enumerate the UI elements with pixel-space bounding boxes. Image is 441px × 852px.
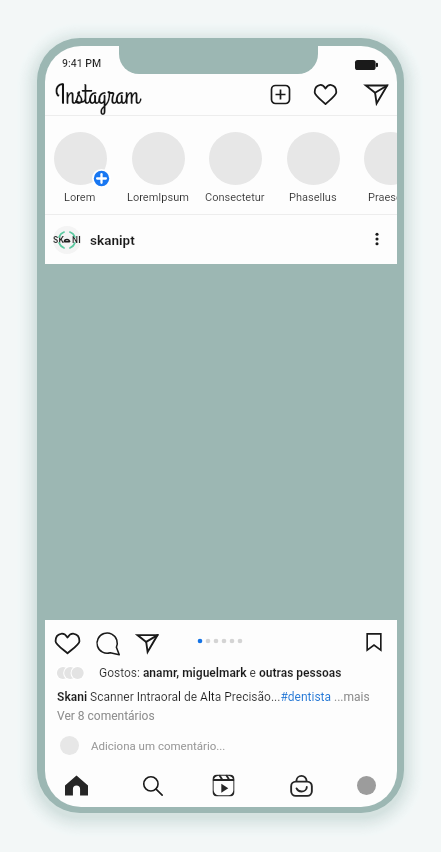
staticText: skanipt: [90, 232, 135, 248]
button[interactable]: Phasellus: [275, 126, 351, 204]
staticText: NI: [72, 235, 81, 245]
button[interactable]: Ver 8 comentários: [57, 706, 155, 726]
button[interactable]: Save: [360, 628, 388, 656]
button[interactable]: Praesent: [352, 126, 397, 204]
button[interactable]: Share: [132, 628, 162, 658]
staticText: Gostos: anamr, miguelmark e outras pesso…: [99, 666, 342, 680]
staticText: Instagram: [55, 78, 140, 114]
button[interactable]: Shop: [284, 768, 318, 802]
button[interactable]: Comment: [92, 628, 122, 658]
button[interactable]: Profile: [350, 769, 382, 801]
staticText: Adiciona um comentário...: [91, 739, 226, 752]
staticText: Consectetur: [205, 191, 265, 204]
button[interactable]: Home: [59, 768, 93, 802]
button[interactable]: SK: [45, 215, 397, 265]
staticText: LoremIpsum: [127, 191, 189, 204]
staticText: SK: [53, 235, 65, 245]
button[interactable]: New post: [265, 79, 295, 109]
button[interactable]: Reels: [206, 768, 240, 802]
button[interactable]: More options: [363, 225, 391, 253]
button[interactable]: Consectetur: [197, 126, 273, 204]
button[interactable]: LoremIpsum: [120, 126, 196, 204]
button[interactable]: Messages: [361, 79, 391, 109]
button[interactable]: Lorem: [45, 126, 118, 204]
button[interactable]: Like: [52, 628, 82, 658]
staticText: Praesent: [368, 191, 397, 204]
staticText: Skani Scanner Intraoral de Alta Precisão…: [57, 690, 370, 704]
staticText: 9:41 PM: [62, 57, 102, 69]
staticText: Ver 8 comentários: [57, 709, 155, 723]
staticText: Lorem: [64, 191, 96, 204]
staticText: Phasellus: [289, 191, 337, 204]
button[interactable]: Adiciona um comentário...: [45, 731, 397, 759]
button[interactable]: Activity: [310, 79, 340, 109]
button[interactable]: Search: [135, 768, 169, 802]
